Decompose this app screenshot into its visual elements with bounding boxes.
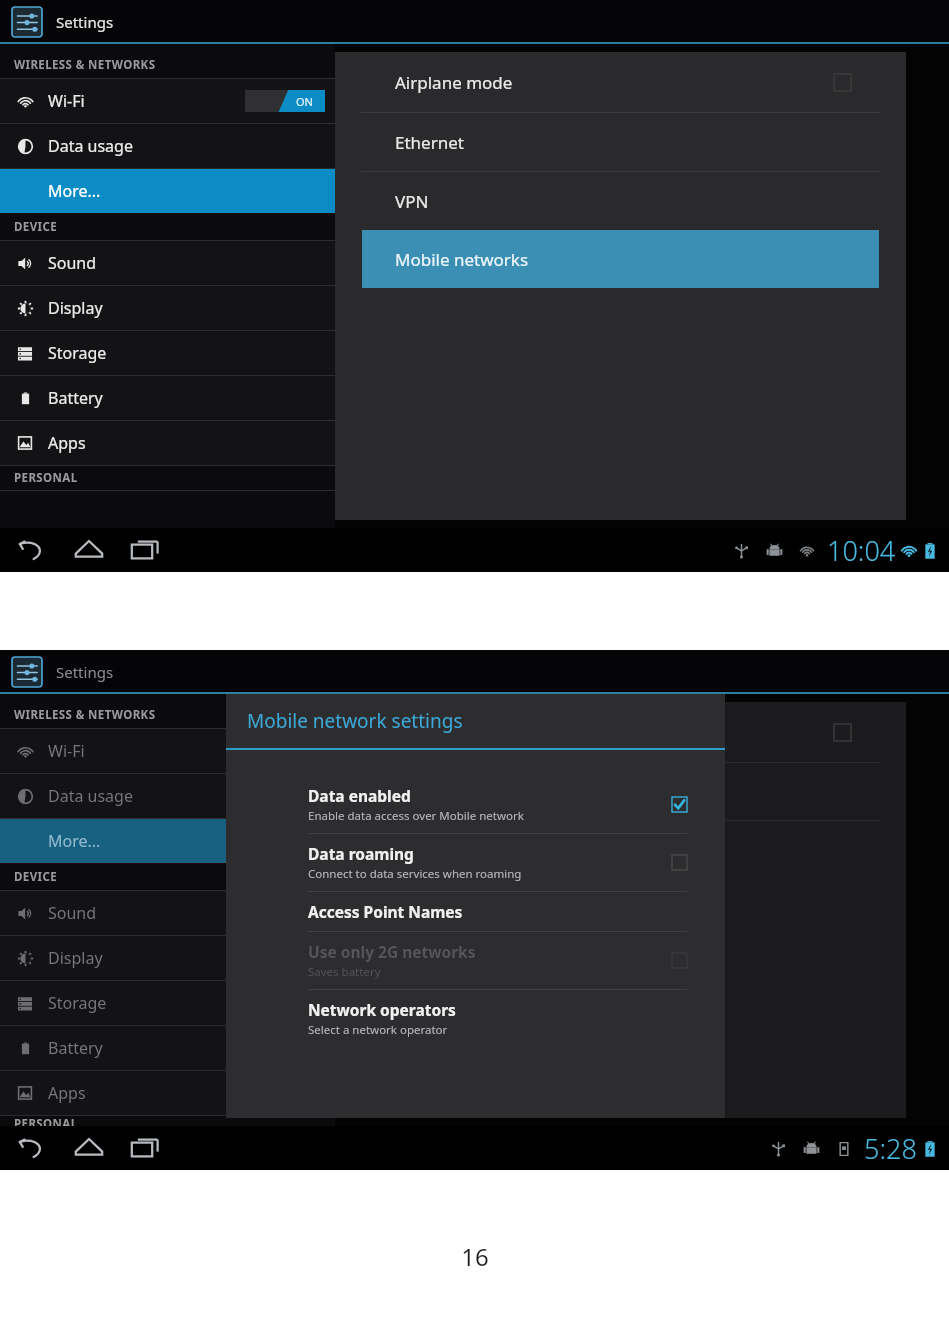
button[interactable]: Apps — [0, 421, 335, 465]
button[interactable]: Home — [74, 535, 104, 565]
staticText: Apps — [48, 1082, 86, 1104]
staticText: More... — [48, 830, 101, 852]
button[interactable]: Recent apps — [130, 1133, 160, 1163]
button[interactable]: Apps — [0, 1071, 335, 1115]
button[interactable]: Status icons and clock — [733, 532, 939, 569]
button[interactable]: Settings app icon — [12, 657, 42, 687]
staticText: Use only 2G networks — [308, 941, 476, 962]
staticText: Display — [48, 947, 103, 969]
button[interactable]: Home — [74, 1133, 104, 1163]
button[interactable]: Settings app icon — [12, 7, 42, 37]
staticText: Battery — [48, 387, 103, 409]
staticText: Settings — [56, 12, 114, 32]
staticText: PERSONAL — [14, 1116, 78, 1126]
button[interactable]: Network operators — [308, 990, 701, 1047]
button[interactable]: More... — [0, 819, 335, 863]
button[interactable]: Storage — [0, 981, 335, 1025]
button[interactable]: Data enabled — [308, 776, 701, 833]
staticText: Mobile network settings — [247, 708, 463, 734]
button[interactable]: Data usage — [0, 774, 335, 818]
staticText: VPN — [395, 190, 429, 213]
button[interactable]: Sound — [0, 891, 335, 935]
staticText: Network operators — [308, 999, 456, 1020]
staticText: Sound — [48, 902, 97, 924]
staticText: Data usage — [48, 785, 133, 807]
staticText: 10:04 — [827, 532, 896, 569]
button[interactable]: Battery — [0, 1026, 335, 1070]
staticText: Apps — [48, 432, 86, 454]
staticText: DEVICE — [14, 869, 58, 885]
button[interactable]: Back — [18, 1133, 48, 1163]
staticText: Sound — [48, 252, 97, 274]
staticText: Battery — [48, 1037, 103, 1059]
staticText: Settings — [56, 662, 114, 682]
button[interactable]: VPN — [335, 172, 906, 230]
button[interactable]: Ethernet — [335, 113, 906, 171]
button[interactable]: Airplane mode — [335, 52, 906, 112]
staticText: Access Point Names — [308, 901, 463, 922]
staticText: DEVICE — [14, 219, 58, 235]
button[interactable]: Data usage — [0, 124, 335, 168]
staticText: Data enabled — [308, 785, 411, 806]
staticText: Wi-Fi — [48, 90, 85, 112]
button[interactable]: Mobile networks — [362, 230, 879, 288]
button[interactable]: Wi-Fi — [0, 729, 335, 773]
staticText: Enable data access over Mobile network — [308, 808, 524, 824]
button[interactable]: Display — [0, 286, 335, 330]
staticText: More... — [48, 180, 101, 202]
button[interactable]: More... — [0, 169, 335, 213]
staticText: WIRELESS & NETWORKS — [14, 707, 156, 723]
staticText: PERSONAL — [14, 470, 78, 486]
staticText: Storage — [48, 992, 107, 1014]
staticText: Display — [48, 297, 103, 319]
staticText: Storage — [48, 342, 107, 364]
staticText: WIRELESS & NETWORKS — [14, 57, 156, 73]
staticText: 5:28 — [864, 1130, 917, 1167]
staticText: Connect to data services when roaming — [308, 866, 522, 882]
button[interactable]: Battery — [0, 376, 335, 420]
staticText: ON — [296, 94, 313, 109]
button[interactable]: Back — [18, 535, 48, 565]
button[interactable]: Access Point Names — [308, 892, 701, 931]
button[interactable]: Sound — [0, 241, 335, 285]
staticText: Data roaming — [308, 843, 414, 864]
staticText: Data usage — [48, 135, 133, 157]
staticText: Mobile networks — [395, 248, 529, 271]
button[interactable]: Use only 2G networks — [308, 932, 701, 989]
staticText: Ethernet — [395, 131, 464, 154]
button[interactable]: Storage — [0, 331, 335, 375]
button[interactable]: Display — [0, 936, 335, 980]
staticText: Saves battery — [308, 964, 381, 980]
button[interactable]: Wi-Fi on off — [245, 90, 325, 112]
button[interactable]: Data roaming — [308, 834, 701, 891]
button[interactable]: Wi-Fi on off — [245, 740, 325, 762]
staticText: Wi-Fi — [48, 740, 85, 762]
button[interactable]: Wi-Fi — [0, 79, 335, 123]
staticText: Select a network operator — [308, 1022, 448, 1038]
staticText: Airplane mode — [395, 71, 513, 94]
button[interactable]: Status icons and clock — [770, 1130, 939, 1167]
button[interactable]: Recent apps — [130, 535, 160, 565]
staticText: 16 — [461, 1240, 489, 1273]
